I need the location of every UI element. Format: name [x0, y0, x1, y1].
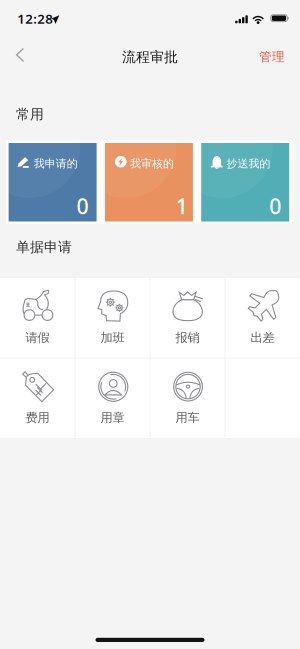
button[interactable]: 请假 — [0, 278, 75, 358]
staticText: 单据申请 — [16, 238, 72, 256]
staticText: 我审核的 — [130, 157, 174, 170]
button[interactable]: 管理 — [237, 37, 285, 77]
staticText: 抄送我的 — [226, 157, 270, 170]
staticText: 常用 — [16, 106, 44, 123]
staticText: 管理 — [259, 49, 285, 65]
button[interactable]: 抄送我的 — [201, 143, 289, 221]
staticText: 报销 — [175, 330, 199, 345]
staticText: 1 — [176, 191, 188, 220]
button[interactable]: 我审核的 — [105, 143, 193, 221]
button[interactable]: 出差 — [225, 278, 300, 358]
staticText: 0 — [77, 191, 89, 220]
staticText: 0 — [269, 191, 281, 220]
staticText: 费用 — [25, 410, 49, 425]
button[interactable]: 用车 — [150, 358, 225, 438]
staticText: 用章 — [100, 410, 124, 425]
button[interactable]: 返回 — [0, 36, 42, 76]
staticText: 出差 — [250, 330, 274, 345]
staticText: 加班 — [100, 330, 124, 345]
staticText: 流程审批 — [122, 48, 178, 66]
button[interactable]: 加班 — [75, 278, 150, 358]
button[interactable]: 费用 — [0, 358, 75, 438]
button[interactable]: 报销 — [150, 278, 225, 358]
button[interactable]: 用章 — [75, 358, 150, 438]
staticText: 12:28 — [17, 9, 53, 27]
staticText: 我申请的 — [34, 157, 78, 170]
staticText: 请假 — [25, 330, 49, 345]
staticText: 用车 — [175, 410, 199, 425]
button[interactable]: 我申请的 — [9, 143, 97, 221]
